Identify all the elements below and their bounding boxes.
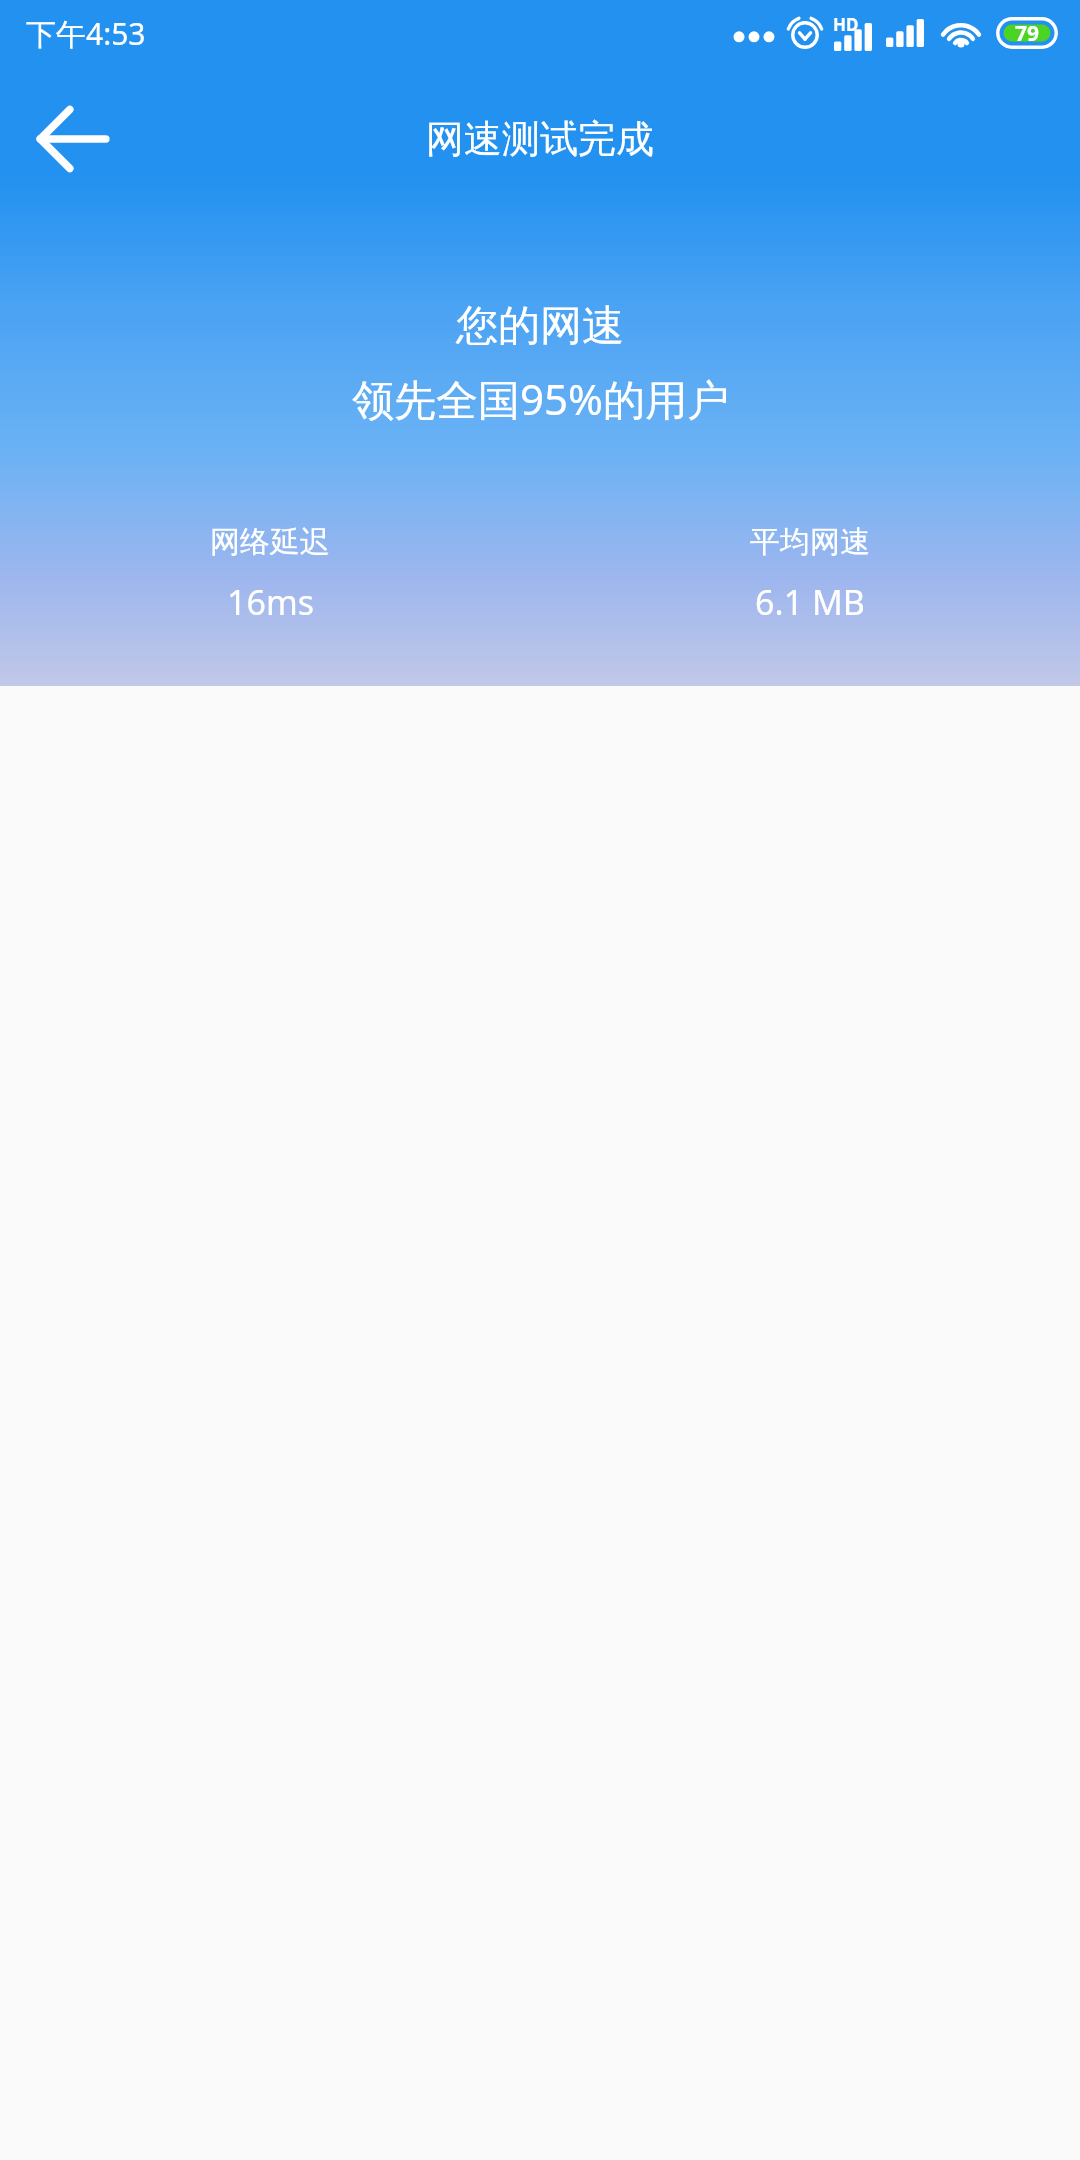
- staticText: 6.1 MB: [755, 579, 865, 625]
- button[interactable]: 平均网速: [540, 523, 1080, 625]
- staticText: 16ms: [227, 579, 314, 625]
- staticText: 网络延迟: [210, 523, 330, 561]
- staticText: 网速测试完成: [426, 115, 654, 163]
- staticText: 下午4:53: [26, 13, 146, 54]
- staticText: 平均网速: [750, 523, 870, 561]
- button[interactable]: 网络延迟: [0, 523, 540, 625]
- staticText: 79: [1015, 19, 1040, 48]
- staticText: 领先全国95%的用户: [352, 370, 729, 427]
- button[interactable]: Back: [18, 85, 126, 193]
- staticText: 您的网速: [456, 300, 624, 353]
- staticText: HD: [833, 13, 859, 36]
